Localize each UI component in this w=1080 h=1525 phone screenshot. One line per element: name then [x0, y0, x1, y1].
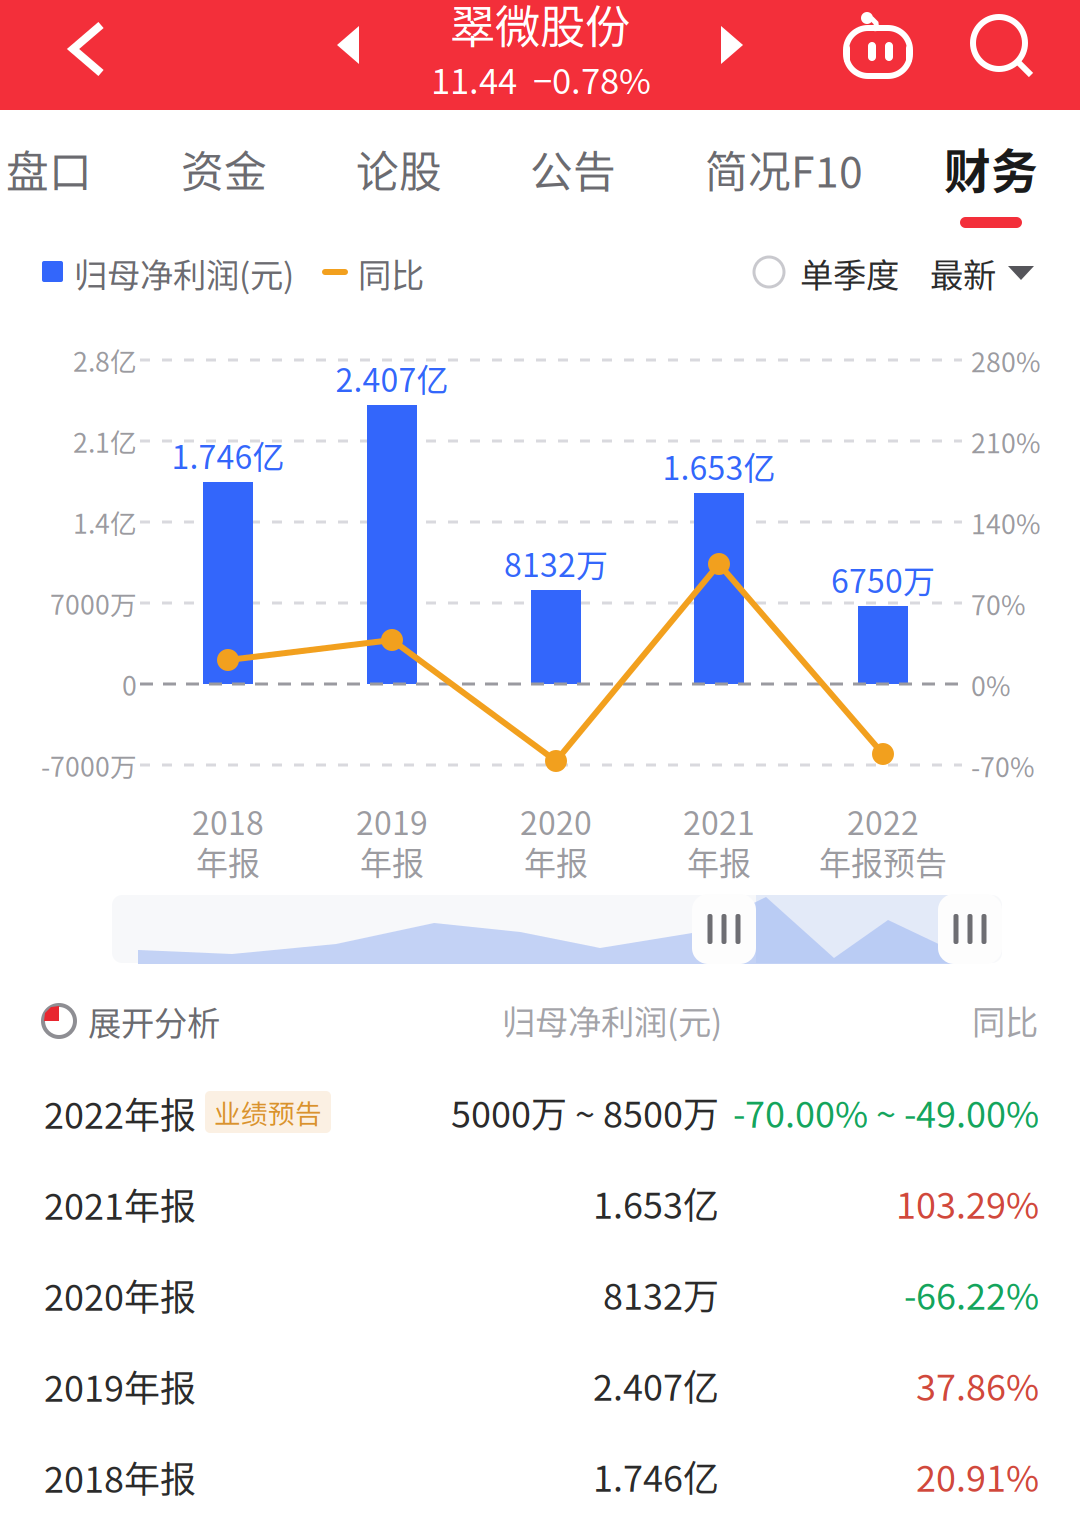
staticText: 210% [971, 422, 1041, 461]
staticText: 2018 [192, 798, 264, 844]
staticText: 2018年报 [44, 1451, 196, 1503]
button[interactable]: 2019年报 [0, 1339, 1080, 1430]
staticText: 1.653亿 [662, 443, 775, 489]
staticText: 2019年报 [44, 1360, 196, 1412]
staticText: 简况F10 [705, 138, 863, 200]
staticText: 年报预告 [819, 838, 947, 884]
staticText: 0 [122, 665, 137, 703]
staticText: 年报 [687, 838, 751, 884]
staticText: 2021年报 [44, 1178, 196, 1230]
staticText: 2022 [847, 798, 919, 844]
staticText: -70% [971, 746, 1035, 785]
staticText: 70% [971, 584, 1026, 623]
staticText: 2.8亿 [73, 341, 137, 379]
staticText: 归母净利润(元) [74, 249, 294, 297]
staticText: 同比 [358, 249, 424, 297]
staticText: 2.1亿 [73, 422, 137, 460]
staticText: 1.746亿 [593, 1450, 719, 1502]
staticText: 单季度 [800, 249, 899, 297]
button[interactable]: 简况F10 [679, 110, 889, 232]
button[interactable]: 展开分析 [42, 974, 262, 1066]
staticText: 280% [971, 341, 1041, 380]
button[interactable]: 论股 [324, 110, 474, 232]
staticText: 同比 [972, 996, 1038, 1044]
staticText: 年报 [196, 838, 260, 884]
button[interactable]: Next stock [686, 0, 778, 99]
staticText: 资金 [181, 138, 267, 200]
staticText: 103.29% [896, 1177, 1039, 1229]
button[interactable]: Assistant [823, 0, 933, 99]
button[interactable]: 公告 [498, 110, 648, 232]
staticText: -7000万 [41, 746, 137, 784]
staticText: 盘口 [6, 138, 92, 200]
staticText: 2.407亿 [593, 1359, 719, 1411]
button[interactable]: 财务 [908, 110, 1068, 232]
button[interactable]: 2020年报 [0, 1248, 1080, 1339]
staticText: 展开分析 [88, 997, 220, 1045]
staticText: 公告 [530, 138, 616, 200]
staticText: 2021 [683, 798, 755, 844]
staticText: 2020 [520, 798, 592, 844]
button[interactable]: 2022年报 [0, 1066, 1080, 1157]
button[interactable]: Back [22, 0, 152, 103]
button[interactable]: 单季度 [752, 232, 932, 312]
staticText: 2019 [356, 798, 428, 844]
button[interactable]: 最新 [930, 232, 1080, 312]
staticText: 5000万 ~ 8500万 [451, 1086, 719, 1138]
staticText: 11.44 −0.78% [431, 54, 651, 104]
staticText: 翠微股份 [450, 0, 630, 57]
staticText: 8132万 [504, 540, 608, 586]
button[interactable]: Previous stock [302, 0, 394, 99]
staticText: 0% [971, 665, 1011, 704]
staticText: 年报 [360, 838, 424, 884]
staticText: 1.746亿 [171, 432, 284, 478]
staticText: 1.4亿 [73, 503, 137, 541]
staticText: 6750万 [831, 556, 935, 602]
staticText: -66.22% [904, 1268, 1039, 1320]
button[interactable]: 资金 [149, 110, 299, 232]
staticText: 论股 [356, 138, 442, 200]
button[interactable]: 2021年报 [0, 1157, 1080, 1248]
staticText: 归母净利润(元) [502, 996, 722, 1044]
button[interactable]: Range start [692, 894, 756, 964]
staticText: 7000万 [50, 584, 137, 622]
staticText: 1.653亿 [593, 1177, 719, 1229]
staticText: -70.00% ~ -49.00% [733, 1086, 1039, 1138]
staticText: 2022年报 [44, 1087, 196, 1139]
staticText: 2020年报 [44, 1269, 196, 1321]
button[interactable]: 盘口 [0, 110, 114, 232]
button[interactable]: 2018年报 [0, 1430, 1080, 1521]
staticText: 财务 [944, 134, 1038, 202]
staticText: 8132万 [603, 1268, 719, 1320]
staticText: 37.86% [916, 1359, 1039, 1411]
staticText: 140% [971, 503, 1041, 542]
staticText: 最新 [930, 249, 996, 297]
staticText: 2.407亿 [335, 355, 448, 401]
staticText: 年报 [524, 838, 588, 884]
button[interactable]: Range end [938, 894, 1002, 964]
button[interactable]: Search [949, 0, 1059, 102]
staticText: 业绩预告 [214, 1093, 322, 1131]
staticText: 20.91% [916, 1450, 1039, 1502]
